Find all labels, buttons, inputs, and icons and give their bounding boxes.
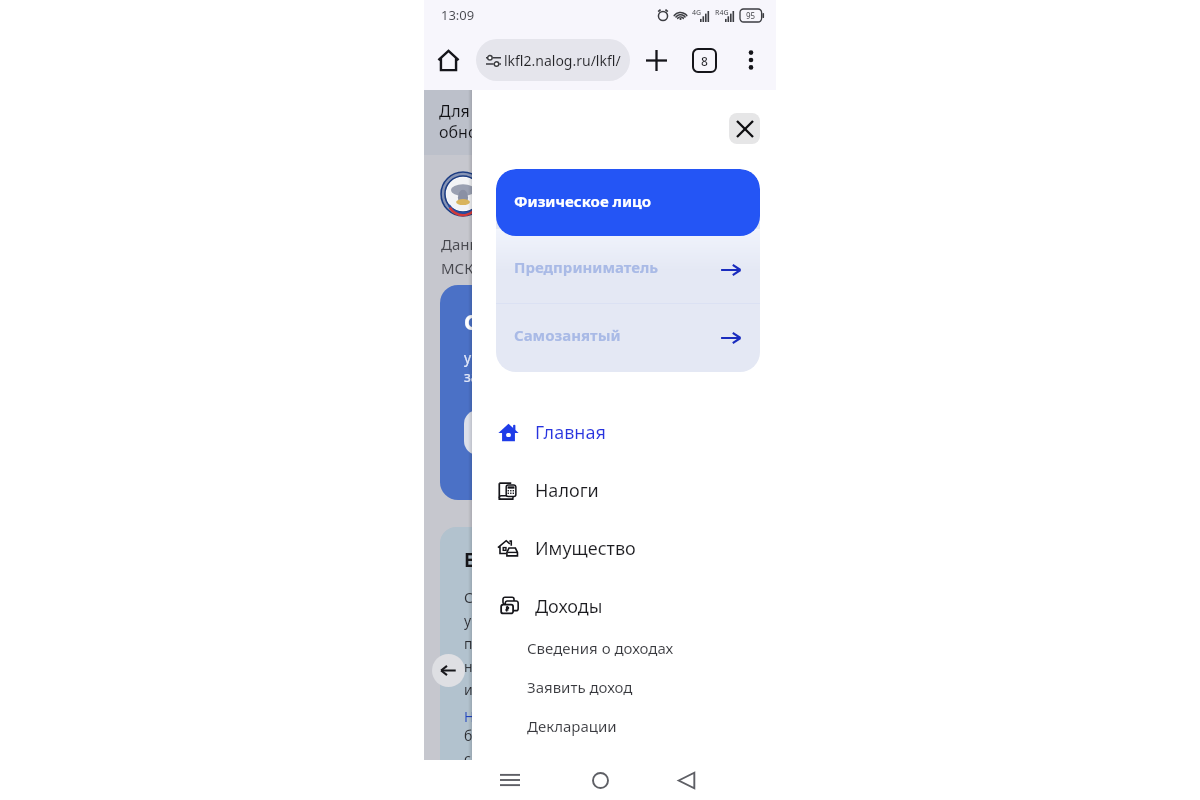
staticText: Сальдо ЕНС — это разница у налогоплатель… — [464, 588, 651, 699]
staticText: Недоимка — [464, 707, 534, 726]
button[interactable]: Имущество — [472, 519, 776, 577]
button[interactable]: Предприниматель — [496, 236, 760, 303]
staticText: Физическое лицо — [514, 191, 652, 211]
button[interactable]: Close — [729, 113, 760, 144]
button[interactable]: Заявить доход — [472, 667, 776, 706]
button[interactable]: Back — [666, 760, 706, 800]
staticText: Декларации — [527, 716, 617, 736]
staticText: Доходы — [535, 594, 603, 619]
staticText: 8 — [701, 53, 708, 69]
button[interactable]: Декларации — [472, 706, 776, 745]
button[interactable]: Самозанятый — [496, 304, 760, 371]
staticText: 13:09 — [441, 6, 475, 24]
button[interactable]: Home — [427, 39, 469, 81]
staticText: 95 — [746, 10, 756, 21]
staticText: 4G — [692, 8, 702, 18]
staticText: более подробно с информацией — [464, 726, 576, 768]
button[interactable]: Home — [580, 760, 620, 800]
staticText: lkfl2.nalog.ru/lkfl/ — [504, 51, 621, 70]
button[interactable]: More options — [730, 39, 772, 81]
button[interactable]: Физическое лицо — [496, 169, 760, 236]
staticText: МСК — [441, 258, 474, 278]
button[interactable]: Tabs — [683, 39, 725, 81]
staticText: Самозанятый — [514, 325, 621, 345]
button[interactable]: Сведения о доходах — [472, 628, 776, 667]
staticText: Справка о состоянии — [464, 306, 703, 336]
staticText: Налоги — [535, 478, 599, 503]
button[interactable]: New tab — [635, 39, 677, 81]
button[interactable]: Back — [432, 654, 465, 687]
staticText: Единый налоговый счёт — [464, 547, 702, 573]
staticText: Главная — [535, 420, 606, 445]
staticText: Для Вашего устройства доступно обновлени… — [439, 100, 699, 143]
staticText: у вас нет неоплаченных задолженностей — [464, 348, 628, 386]
button[interactable]: Налоги — [472, 461, 776, 519]
button[interactable]: Recent apps — [490, 760, 530, 800]
button[interactable]: Главная — [472, 403, 776, 461]
button[interactable]: Доходы — [472, 577, 776, 635]
staticText: R4G — [715, 8, 729, 18]
button[interactable]: lkfl2.nalog.ru/lkfl/ — [476, 39, 630, 81]
staticText: Имущество — [535, 536, 636, 561]
staticText: Предприниматель — [514, 257, 659, 277]
staticText: Сведения о доходах — [527, 638, 674, 658]
staticText: Заявить доход — [527, 677, 633, 697]
staticText: Данные актуальны на 13:07 — [441, 234, 643, 254]
